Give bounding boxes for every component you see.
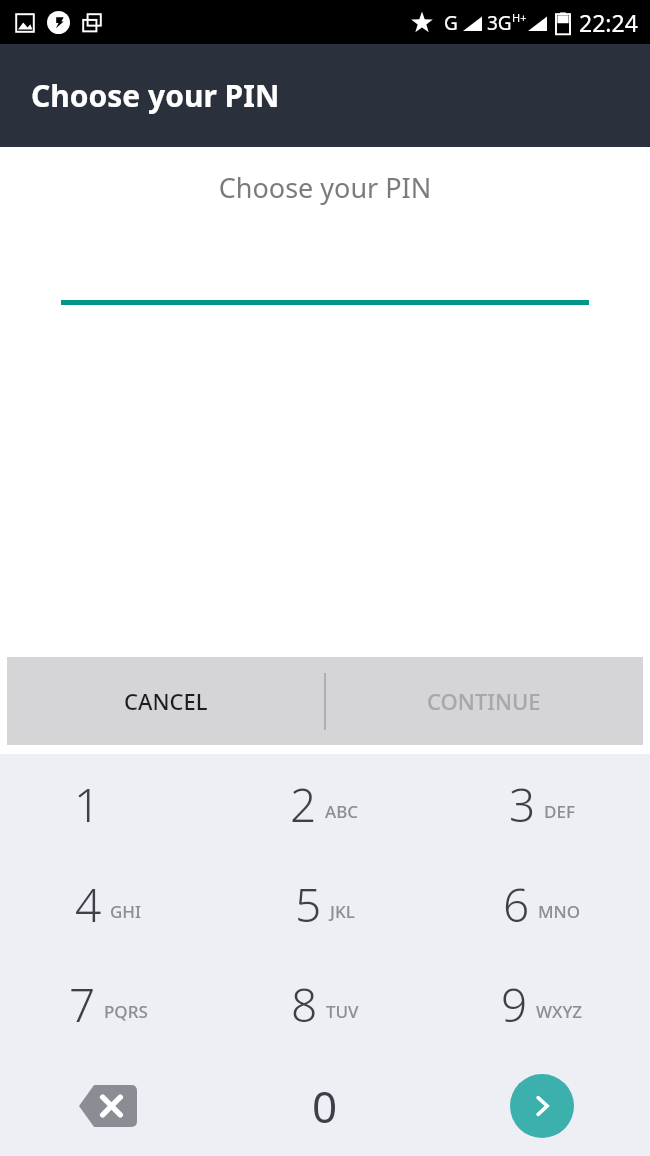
staticText: PQRS (104, 1000, 148, 1023)
staticText: 0 (312, 1076, 338, 1136)
button[interactable]: 0 (216, 1055, 433, 1156)
staticText: 22:24 (579, 7, 638, 38)
staticText: ABC (325, 800, 359, 823)
button[interactable]: 4 (0, 854, 216, 954)
button[interactable]: 7 (0, 954, 216, 1055)
button[interactable]: Backspace (0, 1055, 216, 1156)
staticText: CONTINUE (427, 686, 541, 716)
button[interactable]: 5 (216, 854, 433, 954)
staticText: GHI (110, 900, 142, 923)
staticText: MNO (538, 900, 581, 923)
staticText: CANCEL (124, 686, 208, 716)
button[interactable]: Enter (433, 1055, 650, 1156)
staticText: TUV (326, 1000, 359, 1023)
staticText: 3G (487, 10, 512, 36)
button[interactable]: 8 (216, 954, 433, 1055)
button[interactable]: 2 (216, 754, 433, 854)
button[interactable]: 3 (433, 754, 650, 854)
staticText: 2 (290, 773, 317, 836)
staticText: Choose your PIN (31, 75, 280, 116)
staticText: 7 (69, 973, 96, 1036)
staticText: 1 (74, 773, 101, 836)
staticText: WXYZ (536, 1000, 583, 1023)
staticText: JKL (330, 900, 355, 923)
staticText: Choose your PIN (0, 169, 650, 206)
button[interactable]: CANCEL (7, 657, 325, 745)
staticText: DEF (544, 800, 575, 823)
button[interactable]: 9 (433, 954, 650, 1055)
button[interactable]: 6 (433, 854, 650, 954)
staticText: 3 (509, 773, 536, 836)
staticText: H+ (512, 10, 527, 25)
staticText: 9 (501, 973, 528, 1036)
staticText: G (444, 10, 458, 36)
staticText: 4 (75, 873, 102, 936)
staticText: 8 (291, 973, 318, 1036)
button[interactable]: CONTINUE (325, 657, 643, 745)
staticText: 5 (295, 873, 322, 936)
button[interactable]: 1 (0, 754, 216, 854)
staticText: 6 (503, 873, 530, 936)
